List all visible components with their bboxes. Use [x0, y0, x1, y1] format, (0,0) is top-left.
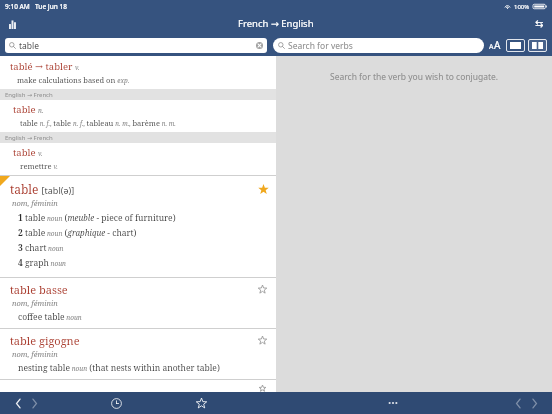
button[interactable]: Next: [526, 395, 542, 411]
staticText: Search for the verb you wish to conjugat…: [330, 71, 499, 83]
staticText: nom, féminin: [12, 298, 58, 308]
staticText: make calculations based on exp.: [17, 75, 130, 85]
button[interactable]: table rase: [0, 380, 276, 392]
button[interactable]: Add to favourites: [256, 283, 268, 295]
button[interactable]: table gigogne: [0, 329, 276, 379]
staticText: A: [489, 42, 494, 52]
staticText: 2 table noun (graphique - chart): [18, 227, 137, 239]
staticText: A: [494, 38, 501, 52]
staticText: tablé → tabler v.: [10, 60, 80, 73]
staticText: coffee table noun: [18, 311, 82, 323]
button[interactable]: More: [382, 392, 404, 414]
button[interactable]: table [tabl(ə)]: [0, 176, 276, 277]
staticText: table gigogne: [10, 333, 80, 348]
staticText: nom, féminin: [12, 198, 58, 208]
button[interactable]: Text size: [489, 38, 501, 52]
staticText: 1 table noun (meuble - piece of furnitur…: [18, 212, 176, 224]
button[interactable]: table: [5, 38, 267, 53]
staticText: 9:10 AM: [5, 2, 30, 11]
staticText: Search for verbs: [288, 40, 353, 52]
button[interactable]: Single pane: [506, 39, 525, 52]
button[interactable]: Previous: [510, 395, 526, 411]
button[interactable]: Add to favourites: [256, 334, 268, 346]
staticText: 100%: [514, 3, 530, 11]
staticText: 3 chart noun: [18, 242, 64, 254]
button[interactable]: History: [106, 393, 126, 413]
staticText: Tue Jun 18: [35, 2, 67, 11]
staticText: table: [19, 40, 40, 52]
staticText: English → French: [5, 134, 53, 142]
staticText: remettre v.: [20, 161, 58, 171]
button[interactable]: table basse: [0, 278, 276, 328]
button[interactable]: Favourites: [191, 393, 211, 413]
button[interactable]: tablé → tabler v.: [0, 56, 276, 89]
staticText: ⇆: [535, 18, 544, 30]
staticText: table basse: [10, 282, 68, 297]
button[interactable]: Swap languages: [531, 16, 547, 32]
button[interactable]: table v.: [0, 143, 276, 175]
staticText: table n. f., table n. f., tableau n. m.,…: [20, 118, 176, 128]
button[interactable]: Favourite: [256, 182, 270, 196]
staticText: English → French: [5, 91, 53, 99]
button[interactable]: Search for verbs: [273, 38, 484, 53]
staticText: 4 graph noun: [18, 257, 66, 269]
staticText: French → English: [238, 17, 314, 30]
staticText: nom, féminin: [12, 349, 58, 359]
staticText: nesting table noun (that nests within an…: [18, 362, 220, 374]
button[interactable]: table n.: [0, 100, 276, 132]
button[interactable]: Dual pane: [528, 39, 547, 52]
button[interactable]: Add to favourites: [256, 385, 268, 392]
staticText: table n.: [13, 103, 44, 116]
button[interactable]: Forward: [26, 395, 42, 411]
staticText: table v.: [13, 146, 43, 159]
staticText: table [tabl(ə)]: [10, 181, 75, 197]
button[interactable]: Back: [10, 395, 26, 411]
button[interactable]: Library: [5, 16, 21, 32]
